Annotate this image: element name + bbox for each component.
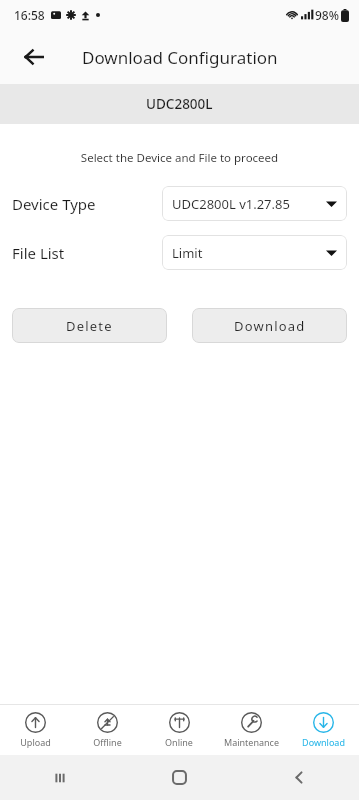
button[interactable]: UDC2800L v1.27.85: [162, 186, 347, 221]
staticText: Select the Device and File to proceed: [0, 150, 359, 166]
staticText: Limit: [172, 244, 326, 262]
staticText: 16:58: [14, 7, 45, 23]
button[interactable]: Recents: [0, 755, 119, 800]
button[interactable]: Download: [287, 705, 359, 755]
button[interactable]: Back: [239, 755, 359, 800]
staticText: Download Configuration: [82, 46, 278, 69]
staticText: File List: [12, 243, 162, 263]
staticText: UDC2800L: [146, 95, 213, 113]
button[interactable]: Limit: [162, 235, 347, 270]
button[interactable]: Upload: [0, 705, 71, 755]
staticText: Download: [234, 317, 306, 335]
staticText: Online: [165, 736, 193, 748]
button[interactable]: Delete: [12, 308, 167, 343]
staticText: Maintenance: [224, 736, 279, 748]
button[interactable]: Home: [119, 755, 239, 800]
button[interactable]: Maintenance: [215, 705, 287, 755]
staticText: Offline: [93, 736, 122, 748]
button[interactable]: Download: [192, 308, 347, 343]
staticText: 98%: [315, 7, 339, 23]
button[interactable]: Offline: [71, 705, 143, 755]
staticText: Download: [302, 736, 345, 748]
staticText: UDC2800L v1.27.85: [172, 195, 326, 213]
staticText: Upload: [20, 736, 51, 748]
button[interactable]: Online: [143, 705, 215, 755]
staticText: Delete: [66, 317, 113, 335]
button[interactable]: Back: [12, 35, 56, 79]
staticText: Device Type: [12, 194, 162, 214]
